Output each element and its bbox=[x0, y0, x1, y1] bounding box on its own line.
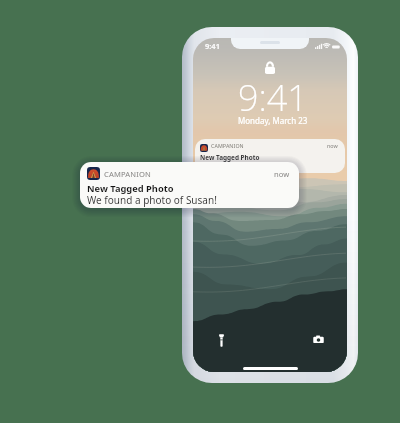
staticText: now bbox=[327, 142, 338, 149]
staticText: 9:41 bbox=[238, 73, 308, 122]
button[interactable]: Flashlight bbox=[211, 326, 232, 347]
staticText: now bbox=[274, 169, 290, 179]
button[interactable]: CAMPANION bbox=[80, 162, 299, 208]
staticText: CAMPANION bbox=[104, 169, 151, 179]
button[interactable]: CAMPANION bbox=[195, 139, 345, 173]
staticText: 9:41 bbox=[205, 41, 220, 51]
staticText: New Tagged Photo bbox=[87, 182, 174, 195]
button[interactable]: Camera bbox=[308, 326, 329, 347]
staticText: Monday, March 23 bbox=[238, 115, 308, 126]
staticText: New Tagged Photo bbox=[200, 153, 260, 162]
staticText: We found a photo of Susan! bbox=[87, 193, 217, 207]
staticText: CAMPANION bbox=[211, 142, 244, 149]
